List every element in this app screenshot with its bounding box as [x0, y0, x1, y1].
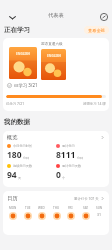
staticText: TUE [25, 206, 31, 210]
staticText: MON [9, 206, 17, 210]
staticText: 天 [18, 176, 21, 180]
staticText: 连续学习天数 [13, 164, 33, 168]
staticText: 英语直通六级 [41, 42, 63, 47]
staticText: 180 [7, 149, 22, 161]
staticText: 正在学习 [4, 26, 30, 34]
button[interactable]: SUN [93, 206, 106, 217]
button[interactable]: TUE [21, 206, 34, 220]
button[interactable]: ENGLISH [3, 38, 109, 111]
button[interactable]: 概览 [7, 134, 105, 141]
staticText: 分钟 [23, 156, 29, 160]
staticText: 0 [56, 169, 61, 181]
staticText: 累计打卡 107 天 [74, 196, 99, 201]
staticText: 日历 [7, 195, 18, 202]
staticText: THU [53, 206, 60, 210]
staticText: 查看全部 [88, 28, 105, 33]
staticText: 累计学习天数 [62, 164, 82, 168]
staticText: FRI [68, 206, 73, 210]
staticText: SUN [96, 206, 103, 210]
staticText: 已学习 7/21 [6, 101, 25, 106]
staticText: 个 [62, 176, 65, 180]
staticText: 我的数据 [4, 118, 30, 126]
staticText: SAT [83, 206, 89, 210]
button[interactable]: 连续学习天数 [7, 164, 56, 181]
staticText: 31 [97, 212, 102, 217]
staticText: 今日学习时长 [13, 144, 33, 148]
staticText: 已学习 3/21 [14, 82, 38, 88]
button[interactable]: THU [50, 206, 63, 220]
button[interactable]: FRI [64, 206, 77, 220]
staticText: 代表表 [48, 12, 64, 19]
staticText: 概览 [7, 134, 18, 141]
staticText: ENGLISH [47, 54, 61, 58]
staticText: 还需学习 14 课 [83, 101, 106, 106]
staticText: 分钟 [77, 156, 83, 160]
button[interactable]: 日历 [7, 195, 105, 202]
staticText: WED [38, 206, 45, 210]
button[interactable]: SAT [79, 206, 92, 220]
button[interactable]: MON [6, 206, 19, 220]
button[interactable]: 今日学习时长 [7, 144, 56, 161]
staticText: ENGLISH [16, 52, 30, 56]
button[interactable]: Share [98, 11, 110, 23]
staticText: 94 [7, 169, 17, 181]
button[interactable]: Collapse [6, 11, 18, 23]
button[interactable]: 累计学习天数 [56, 164, 105, 181]
button[interactable]: WED [35, 206, 48, 220]
staticText: 累计学习 [62, 144, 75, 148]
staticText: 8111 [56, 149, 76, 161]
button[interactable]: 累计学习 [56, 144, 105, 161]
button[interactable]: 查看全部 [84, 26, 109, 34]
